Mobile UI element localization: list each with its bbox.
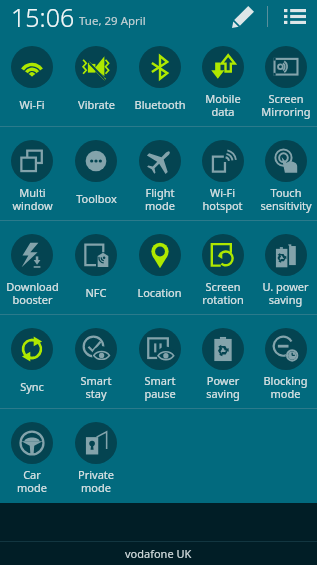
staticText: NFC (85, 285, 107, 300)
button[interactable]: U. power saving (254, 221, 317, 315)
staticText: Wi-Fi (19, 97, 45, 112)
staticText: Mobile data (205, 91, 241, 119)
button[interactable]: Mobile data (191, 33, 254, 127)
button[interactable]: Private mode (64, 409, 128, 503)
staticText: Screen Mirroring (261, 91, 311, 119)
staticText: Blocking mode (263, 373, 308, 401)
staticText: Location (137, 285, 182, 300)
staticText: Touch sensitivity (260, 185, 312, 213)
button[interactable]: Wi-Fi (0, 33, 64, 127)
button[interactable]: Power saving (191, 315, 254, 409)
button[interactable]: All settings (278, 0, 311, 33)
button[interactable]: Vibrate (64, 33, 128, 127)
staticText: Smart stay (80, 373, 112, 401)
button[interactable]: Screen rotation (191, 221, 254, 315)
staticText: Multi window (12, 185, 53, 213)
staticText: U. power saving (262, 279, 309, 307)
button[interactable]: Screen Mirroring (254, 33, 317, 127)
button[interactable]: Car mode (0, 409, 64, 503)
button[interactable]: Sync (0, 315, 64, 409)
button[interactable]: Download booster (0, 221, 64, 315)
button[interactable]: Edit quick settings (226, 0, 259, 33)
staticText: Wi-Fi hotspot (202, 185, 243, 213)
staticText: Vibrate (78, 97, 115, 112)
staticText: Flight mode (145, 185, 175, 213)
staticText: Car mode (17, 467, 47, 495)
button[interactable]: Toolbox (64, 127, 128, 221)
staticText: Download booster (6, 279, 59, 307)
staticText: Smart pause (144, 373, 176, 401)
button[interactable]: Blocking mode (254, 315, 317, 409)
button[interactable]: Smart pause (128, 315, 191, 409)
button[interactable]: Location (128, 221, 191, 315)
button[interactable]: Touch sensitivity (254, 127, 317, 221)
staticText: Tue, 29 April (79, 13, 146, 29)
button[interactable]: Bluetooth (128, 33, 191, 127)
staticText: Toolbox (76, 191, 117, 206)
staticText: Private mode (78, 467, 114, 495)
staticText: Bluetooth (134, 97, 186, 112)
button[interactable]: Flight mode (128, 127, 191, 221)
staticText: 15:06 (11, 0, 75, 33)
staticText: Screen rotation (202, 279, 244, 307)
button[interactable]: Smart stay (64, 315, 128, 409)
staticText: Sync (20, 379, 44, 394)
button[interactable]: Wi-Fi hotspot (191, 127, 254, 221)
staticText: Power saving (206, 373, 240, 401)
button[interactable]: Multi window (0, 127, 64, 221)
button[interactable]: NFC (64, 221, 128, 315)
staticText: vodafone UK (125, 546, 192, 561)
